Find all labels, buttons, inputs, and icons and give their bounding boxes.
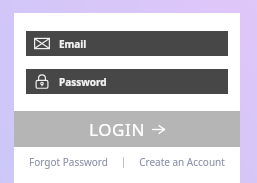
button[interactable]: Email icon <box>26 31 228 56</box>
staticText: Password <box>59 75 107 89</box>
staticText: Email <box>59 37 87 51</box>
other: Email icon <box>34 36 50 51</box>
staticText: Create an Account <box>139 155 225 169</box>
button[interactable]: Create an Account <box>136 152 228 172</box>
button[interactable]: Password icon <box>26 69 228 94</box>
staticText: LOGIN <box>89 118 145 141</box>
button[interactable]: LOGIN <box>14 111 240 147</box>
staticText: Forgot Password <box>29 155 108 169</box>
other: Password icon <box>34 74 50 89</box>
button[interactable]: Forgot Password <box>26 152 111 172</box>
